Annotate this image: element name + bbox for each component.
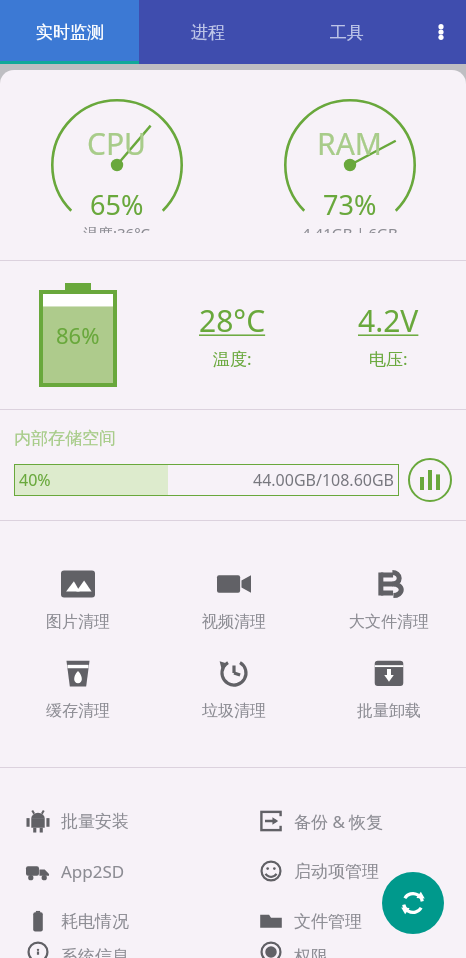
button[interactable]: 耗电情况: [26, 896, 233, 946]
button[interactable]: 4.2V: [310, 300, 466, 370]
button[interactable]: App2SD: [26, 846, 233, 896]
staticText: 内部存储空间: [14, 428, 116, 449]
staticText: 缓存清理: [46, 701, 110, 721]
staticText: 28°C: [199, 300, 266, 341]
button[interactable]: 图片清理: [0, 567, 156, 632]
button[interactable]: RAM: [233, 70, 466, 260]
button[interactable]: 28°C: [155, 300, 310, 370]
button[interactable]: 缓存清理: [0, 656, 156, 721]
staticText: 工具: [330, 22, 364, 43]
button[interactable]: Refresh: [382, 872, 444, 934]
button[interactable]: 权限: [259, 946, 466, 958]
button[interactable]: 系统信息: [26, 946, 233, 958]
staticText: 垃圾清理: [202, 701, 266, 721]
button[interactable]: 大文件清理: [311, 567, 466, 632]
staticText: 视频清理: [202, 612, 266, 632]
button[interactable]: 备份 & 恢复: [259, 796, 466, 846]
staticText: 65%: [90, 186, 144, 223]
staticText: App2SD: [61, 860, 125, 883]
staticText: 耗电情况: [61, 911, 129, 932]
staticText: 系统信息: [61, 946, 129, 958]
staticText: 4.41GB | 6GB: [302, 223, 398, 233]
staticText: CPU: [87, 123, 147, 164]
button[interactable]: 启动项管理: [259, 846, 466, 896]
staticText: 批量安装: [61, 811, 129, 832]
button[interactable]: 批量安装: [26, 796, 233, 846]
button[interactable]: Storage analysis: [408, 458, 452, 502]
staticText: 批量卸载: [357, 701, 421, 721]
button[interactable]: 进程: [139, 0, 277, 64]
staticText: 温度:36°C: [83, 223, 151, 233]
staticText: 73%: [323, 186, 377, 223]
button[interactable]: 批量卸载: [311, 656, 466, 721]
button[interactable]: 内部存储空间: [14, 410, 452, 520]
staticText: RAM: [317, 123, 383, 164]
staticText: 电压:: [369, 347, 408, 370]
button[interactable]: 86%: [39, 283, 117, 387]
staticText: 启动项管理: [294, 861, 379, 882]
button[interactable]: 实时监测: [0, 0, 139, 64]
staticText: 4.2V: [358, 300, 419, 341]
button[interactable]: 视频清理: [156, 567, 311, 632]
staticText: 实时监测: [36, 22, 104, 43]
staticText: 44.00GB/108.60GB: [253, 469, 394, 491]
staticText: 文件管理: [294, 911, 362, 932]
staticText: 大文件清理: [349, 612, 429, 632]
staticText: 进程: [191, 22, 225, 43]
staticText: 备份 & 恢复: [294, 810, 384, 833]
staticText: 温度:: [213, 347, 252, 370]
staticText: 权限: [294, 946, 328, 958]
button[interactable]: 工具: [277, 0, 416, 64]
button[interactable]: CPU: [0, 70, 233, 260]
button[interactable]: 垃圾清理: [156, 656, 311, 721]
button[interactable]: More options: [416, 0, 466, 64]
staticText: 40%: [19, 469, 51, 491]
staticText: 86%: [56, 320, 100, 350]
staticText: 图片清理: [46, 612, 110, 632]
button[interactable]: 文件管理: [259, 896, 466, 946]
